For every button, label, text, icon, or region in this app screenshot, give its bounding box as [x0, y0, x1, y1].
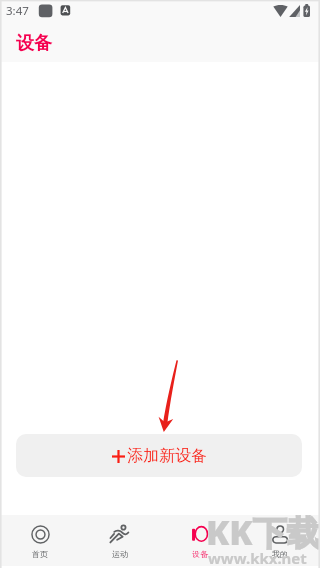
staticText: 设备 [192, 549, 208, 559]
staticText: 我的 [272, 549, 288, 559]
staticText: www.kkx.net [208, 548, 307, 568]
staticText: 设备 [16, 32, 52, 55]
staticText: KK下载 [206, 509, 320, 555]
staticText: 运动 [112, 549, 128, 559]
button[interactable]: 首页 [0, 515, 80, 566]
button[interactable]: 添加新设备 [16, 434, 302, 477]
staticText: 添加新设备 [127, 446, 207, 466]
button[interactable]: 我的 [240, 515, 320, 566]
staticText: 3:47 [6, 3, 29, 19]
button[interactable]: 运动 [80, 515, 160, 566]
staticText: 首页 [32, 549, 48, 559]
button[interactable]: 设备 [160, 515, 240, 566]
